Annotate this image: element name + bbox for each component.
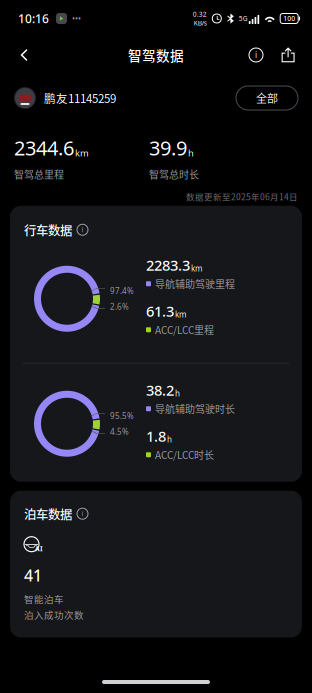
staticText: 2344.6 bbox=[14, 134, 74, 161]
staticText: 全部 bbox=[256, 90, 278, 106]
staticText: 泊入成功次数 bbox=[24, 608, 84, 621]
staticText: 2283.3 bbox=[146, 255, 190, 275]
staticText: 10:16 bbox=[18, 10, 49, 26]
button[interactable]: 返回 bbox=[8, 37, 40, 73]
staticText: 1.8 bbox=[146, 426, 166, 446]
button[interactable]: 分享 bbox=[272, 37, 304, 73]
staticText: 100 bbox=[283, 14, 295, 23]
staticText: 39.9 bbox=[149, 134, 187, 161]
staticText: 导航辅助驾驶里程 bbox=[155, 276, 235, 291]
staticText: 38.2 bbox=[146, 380, 174, 400]
staticText: AI bbox=[35, 544, 43, 553]
staticText: 95.5% bbox=[110, 411, 134, 421]
staticText: i bbox=[255, 50, 257, 60]
staticText: 智驾数据 bbox=[128, 45, 184, 65]
staticText: ACC/LCC里程 bbox=[155, 322, 214, 337]
staticText: ACC/LCC时长 bbox=[155, 447, 214, 462]
staticText: h bbox=[167, 434, 172, 445]
staticText: 97.4% bbox=[110, 286, 134, 296]
staticText: h bbox=[175, 388, 180, 399]
staticText: h bbox=[188, 147, 194, 159]
staticText: 4.5% bbox=[110, 426, 129, 437]
staticText: 61.3 bbox=[146, 301, 174, 321]
staticText: 泊车数据 bbox=[24, 505, 72, 523]
staticText: 智能泊车 bbox=[24, 592, 64, 606]
staticText: 5G bbox=[239, 14, 248, 23]
staticText: ••• bbox=[72, 13, 81, 24]
staticText: i bbox=[81, 225, 83, 234]
staticText: KB/s bbox=[194, 18, 207, 27]
button[interactable]: 全部 bbox=[236, 86, 298, 110]
button[interactable]: 说明 bbox=[240, 37, 272, 73]
staticText: 41 bbox=[24, 565, 42, 586]
staticText: km bbox=[75, 147, 89, 159]
staticText: km bbox=[191, 263, 202, 274]
staticText: 智驾总里程 bbox=[14, 167, 64, 181]
staticText: 0.32 bbox=[193, 10, 207, 18]
staticText: 鹏友11145259 bbox=[44, 90, 116, 106]
staticText: 行车数据 bbox=[24, 221, 72, 239]
staticText: 导航辅助驾驶时长 bbox=[155, 401, 235, 416]
staticText: km bbox=[175, 309, 186, 320]
staticText: 智驾总时长 bbox=[149, 167, 199, 181]
staticText: 2.6% bbox=[110, 301, 129, 312]
staticText: i bbox=[81, 509, 83, 518]
staticText: 数据更新至2025年06月14日 bbox=[186, 190, 298, 203]
